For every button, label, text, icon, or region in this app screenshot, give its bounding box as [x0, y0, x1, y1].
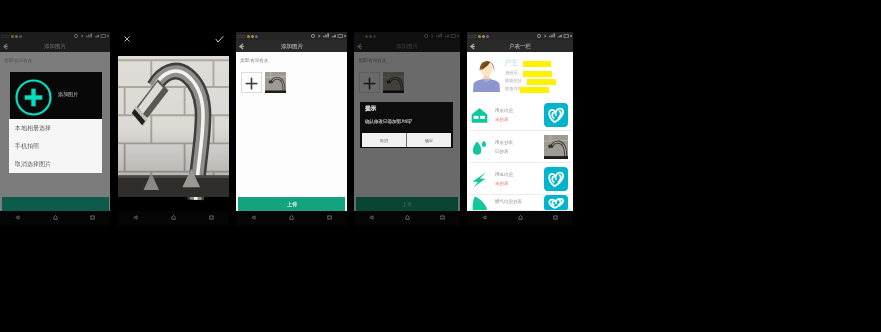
staticText: 确定	[425, 138, 433, 143]
staticText: Android System	[355, 33, 364, 39]
staticText: 户主	[504, 58, 518, 67]
button[interactable]: Back	[368, 214, 375, 221]
staticText: 用水抄表	[495, 140, 513, 146]
staticText: 户表一栏	[509, 43, 531, 50]
button[interactable]: Photo	[265, 72, 286, 93]
button[interactable]: 上传	[356, 197, 458, 211]
button[interactable]: Recents	[326, 214, 333, 221]
button[interactable]: Home	[52, 214, 59, 221]
staticText: 确认修改已添加图片吗?	[365, 118, 412, 124]
staticText: 家庭住址	[505, 78, 522, 83]
button[interactable]: Back	[368, 214, 375, 221]
staticText: 未抄表	[495, 117, 509, 123]
button[interactable]: Back	[132, 214, 139, 221]
staticText: 用水信息	[495, 108, 513, 114]
button[interactable]: Back	[355, 42, 364, 51]
button[interactable]: 本地相册选择	[9, 119, 102, 137]
button[interactable]: Meter logo	[544, 195, 568, 211]
button[interactable]: 用电信息	[467, 163, 573, 195]
staticText: 已抄表	[495, 149, 509, 155]
button[interactable]: Meter photo	[544, 135, 568, 159]
button[interactable]: Back	[237, 42, 246, 51]
staticText: 类型:有没有水	[358, 57, 387, 63]
button[interactable]: 添加图片	[10, 72, 102, 119]
button[interactable]: Back	[481, 214, 488, 221]
staticText: 提示	[365, 105, 376, 112]
button[interactable]: Close	[123, 35, 131, 43]
button[interactable]: 上传	[238, 197, 345, 211]
staticText: 类型:有没有水	[240, 57, 269, 63]
staticText: 未抄表	[495, 181, 509, 187]
button[interactable]: Home	[288, 214, 295, 221]
button[interactable]: Recents	[439, 214, 446, 221]
button[interactable]: Recents	[552, 214, 559, 221]
button[interactable]: Back	[250, 214, 257, 221]
button[interactable]: Add photo	[241, 72, 262, 93]
staticText: 上传	[402, 201, 412, 207]
button[interactable]: Home	[517, 214, 524, 221]
button[interactable]: Recents	[89, 214, 96, 221]
staticText: 添加图片	[281, 43, 303, 50]
button[interactable]: Home	[404, 214, 411, 221]
button[interactable]: Meter logo	[544, 167, 568, 191]
staticText: 取消选择图片	[15, 160, 51, 168]
staticText: 添加图片	[396, 43, 418, 50]
button[interactable]: Back	[1, 42, 10, 51]
button[interactable]: Photo	[383, 72, 404, 93]
staticText: 身份证	[505, 70, 518, 75]
button[interactable]: 确定	[407, 133, 451, 147]
button[interactable]: 取消选择图片	[9, 155, 102, 173]
button[interactable]: Home	[404, 214, 411, 221]
staticText: Android System	[237, 33, 246, 39]
button[interactable]: 用水抄表	[467, 131, 573, 163]
button[interactable]: Home	[170, 214, 177, 221]
button[interactable]: 用水信息	[467, 99, 573, 131]
staticText: Android System	[1, 33, 10, 39]
staticText: 添加图片	[58, 91, 78, 97]
staticText: Android System	[468, 33, 477, 39]
staticText: 类型:有没有水	[4, 57, 33, 63]
staticText: 用电信息	[495, 172, 513, 178]
staticText: 本地相册选择	[15, 124, 51, 132]
button[interactable]: Recents	[439, 214, 446, 221]
staticText: 手机拍照	[15, 142, 39, 150]
button[interactable]: 取消	[362, 133, 406, 147]
button[interactable]: Back	[14, 214, 21, 221]
staticText: 燃气信息抄表	[495, 199, 522, 205]
button[interactable]: 燃气信息抄表	[467, 195, 573, 211]
staticText: 添加图片	[44, 43, 66, 50]
staticText: 联系方式	[505, 86, 522, 91]
staticText: 上传	[287, 201, 297, 207]
button[interactable]: Back	[468, 42, 477, 51]
button[interactable]: 手机拍照	[9, 137, 102, 155]
button[interactable]: Add photo	[359, 72, 380, 93]
button[interactable]: Meter logo	[544, 103, 568, 127]
button[interactable]: Confirm	[215, 35, 224, 44]
button[interactable]: Recents	[208, 214, 215, 221]
staticText: 取消	[380, 138, 388, 143]
